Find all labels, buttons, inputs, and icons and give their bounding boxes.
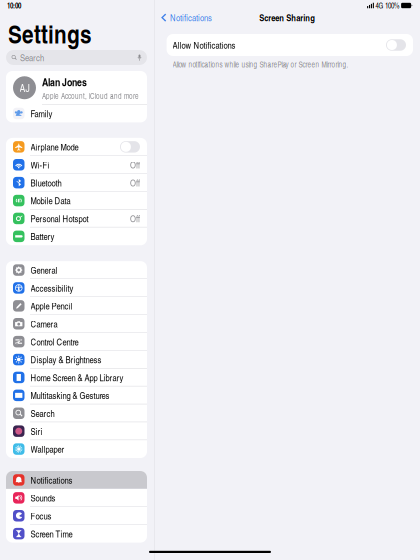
staticText: Apple Account, iCloud and more bbox=[42, 90, 139, 101]
button[interactable]: Wi-Fi bbox=[6, 156, 147, 174]
staticText: Multitasking & Gestures bbox=[30, 389, 109, 402]
staticText: Allow Notifications bbox=[173, 39, 236, 51]
staticText: Alan Jones bbox=[42, 74, 87, 89]
button[interactable]: Screen Time bbox=[6, 525, 147, 543]
button[interactable]: Notifications bbox=[6, 471, 147, 489]
staticText: Off bbox=[130, 158, 140, 171]
button[interactable]: Notifications bbox=[155, 11, 216, 24]
staticText: Screen Time bbox=[30, 527, 72, 540]
staticText: Siri bbox=[30, 425, 42, 438]
button[interactable]: AJ bbox=[6, 71, 147, 104]
button[interactable]: Personal Hotspot bbox=[6, 209, 147, 227]
staticText: AJ bbox=[19, 80, 29, 95]
button[interactable]: Allow Notifications bbox=[167, 34, 413, 56]
button[interactable]: Camera bbox=[6, 315, 147, 333]
staticText: Search bbox=[20, 51, 44, 64]
staticText: Allow notifications while using SharePla… bbox=[173, 59, 349, 70]
staticText: Camera bbox=[30, 317, 57, 330]
staticText: Airplane Mode bbox=[30, 140, 78, 153]
button[interactable]: Accessibility bbox=[6, 279, 147, 297]
staticText: Screen Sharing bbox=[259, 11, 315, 24]
button[interactable]: Search bbox=[6, 404, 147, 422]
staticText: Mobile Data bbox=[30, 194, 70, 207]
staticText: Settings bbox=[8, 16, 92, 51]
button[interactable]: Sounds bbox=[6, 489, 147, 507]
button[interactable]: Focus bbox=[6, 507, 147, 525]
staticText: General bbox=[30, 264, 57, 276]
button[interactable]: Display & Brightness bbox=[6, 351, 147, 368]
button[interactable]: Siri bbox=[6, 422, 147, 440]
staticText: Battery bbox=[30, 230, 54, 243]
staticText: Control Centre bbox=[30, 335, 78, 348]
button[interactable]: Control Centre bbox=[6, 333, 147, 351]
button[interactable]: Family bbox=[6, 104, 147, 122]
staticText: Home Screen & App Library bbox=[30, 371, 123, 384]
button[interactable]: Home Screen & App Library bbox=[6, 368, 147, 386]
button[interactable]: General bbox=[6, 261, 147, 279]
staticText: Notifications bbox=[170, 11, 212, 24]
staticText: Search bbox=[30, 407, 54, 420]
staticText: Display & Brightness bbox=[30, 353, 101, 366]
staticText: Wi-Fi bbox=[30, 158, 49, 171]
button[interactable]: Search bbox=[6, 50, 147, 65]
staticText: Wallpaper bbox=[30, 443, 64, 455]
button[interactable]: Wallpaper bbox=[6, 440, 147, 458]
staticText: Focus bbox=[30, 509, 51, 522]
button[interactable]: Multitasking & Gestures bbox=[6, 386, 147, 404]
staticText: Off bbox=[130, 212, 140, 225]
staticText: Sounds bbox=[30, 491, 55, 504]
staticText: Apple Pencil bbox=[30, 299, 72, 312]
staticText: Off bbox=[130, 176, 140, 189]
staticText: 100% bbox=[385, 0, 399, 11]
button[interactable]: Mobile Data bbox=[6, 192, 147, 209]
staticText: Accessibility bbox=[30, 282, 73, 294]
button[interactable]: Airplane Mode bbox=[6, 138, 147, 156]
staticText: Bluetooth bbox=[30, 176, 61, 189]
button[interactable]: Apple Pencil bbox=[6, 297, 147, 315]
staticText: Family bbox=[30, 107, 52, 120]
staticText: 4G bbox=[375, 0, 383, 11]
staticText: Notifications bbox=[30, 474, 72, 486]
staticText: 10:00 bbox=[7, 0, 21, 11]
button[interactable]: Battery bbox=[6, 227, 147, 245]
button[interactable]: Bluetooth bbox=[6, 174, 147, 192]
staticText: Personal Hotspot bbox=[30, 212, 88, 225]
